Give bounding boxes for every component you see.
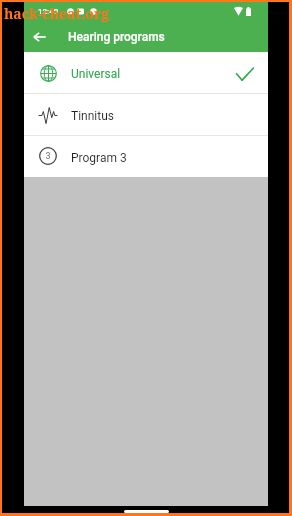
staticText: 3 <box>45 151 51 162</box>
staticText: Tinnitus <box>71 109 114 123</box>
button[interactable]: 3 <box>24 136 268 177</box>
staticText: Hearing programs <box>68 30 165 44</box>
staticText: 12:49 <box>38 7 59 16</box>
button[interactable]: Tinnitus <box>24 94 268 135</box>
button[interactable]: Universal <box>24 52 268 93</box>
staticText: Program 3 <box>71 151 127 165</box>
staticText: Universal <box>71 67 121 81</box>
staticText: hack-cheat.org <box>4 4 110 23</box>
button[interactable]: Back <box>24 21 55 52</box>
